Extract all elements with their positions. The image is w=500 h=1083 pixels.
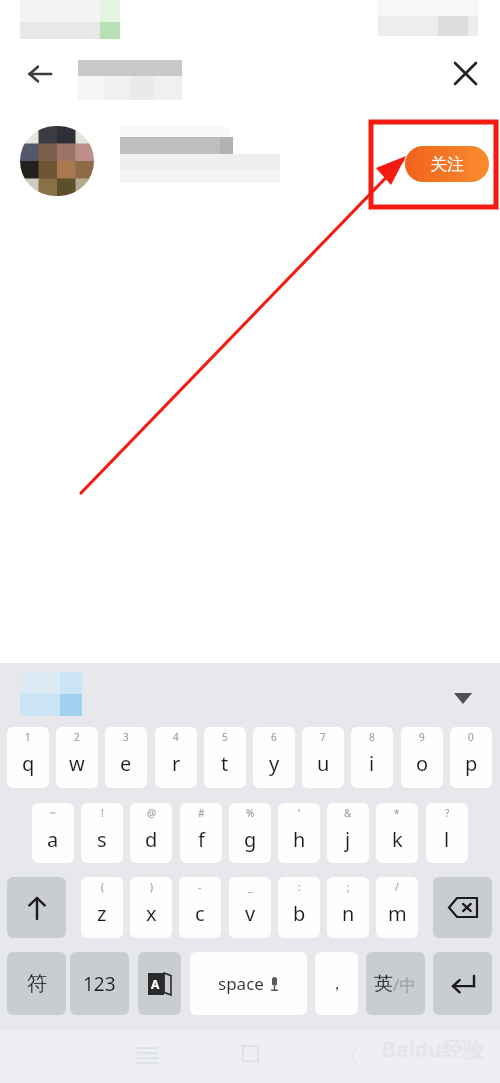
- staticText: 6: [271, 730, 277, 744]
- staticText: :: [298, 880, 301, 894]
- staticText: o: [416, 750, 429, 777]
- staticText: a: [47, 826, 59, 853]
- button[interactable]: ~: [32, 803, 74, 863]
- button[interactable]: !: [81, 803, 123, 863]
- staticText: u: [317, 750, 330, 777]
- button[interactable]: %: [229, 803, 271, 863]
- staticText: e: [120, 750, 132, 777]
- button[interactable]: 4: [155, 727, 197, 788]
- button[interactable]: Back: [14, 49, 66, 99]
- button[interactable]: 123: [70, 952, 129, 1015]
- staticText: i: [369, 750, 375, 777]
- staticText: /: [395, 880, 399, 894]
- staticText: /中: [393, 973, 417, 996]
- staticText: h: [293, 826, 306, 853]
- staticText: A: [151, 976, 160, 992]
- button[interactable]: space: [190, 952, 307, 1015]
- staticText: space: [218, 972, 264, 995]
- button[interactable]: [433, 877, 492, 938]
- staticText: t: [221, 750, 229, 777]
- button[interactable]: ?: [426, 803, 468, 863]
- staticText: p: [465, 750, 478, 777]
- button[interactable]: 8: [351, 727, 393, 788]
- button[interactable]: 6: [253, 727, 295, 788]
- button[interactable]: 7: [302, 727, 344, 788]
- staticText: d: [145, 826, 158, 853]
- button[interactable]: :: [278, 877, 320, 938]
- staticText: ~: [50, 806, 56, 820]
- button[interactable]: ': [278, 803, 320, 863]
- staticText: @: [147, 806, 156, 820]
- button[interactable]: ，: [315, 952, 358, 1015]
- staticText: v: [245, 900, 256, 927]
- button[interactable]: @: [130, 803, 172, 863]
- button[interactable]: *: [376, 803, 418, 863]
- staticText: ?: [445, 806, 450, 820]
- staticText: c: [195, 900, 205, 927]
- button[interactable]: 2: [56, 727, 98, 788]
- staticText: j: [345, 826, 351, 853]
- staticText: &: [344, 806, 352, 820]
- button[interactable]: /: [376, 877, 418, 938]
- staticText: 7: [320, 730, 326, 744]
- staticText: f: [198, 826, 205, 853]
- staticText: (: [101, 880, 104, 894]
- staticText: 关注: [430, 154, 464, 175]
- button[interactable]: 0: [450, 727, 492, 788]
- staticText: r: [172, 750, 181, 777]
- staticText: w: [69, 750, 85, 777]
- button[interactable]: 英: [366, 952, 425, 1015]
- staticText: 3: [123, 730, 129, 744]
- staticText: ;: [347, 880, 350, 894]
- button[interactable]: ): [130, 877, 172, 938]
- button[interactable]: 5: [204, 727, 246, 788]
- staticText: g: [244, 826, 257, 853]
- staticText: k: [392, 826, 403, 853]
- button[interactable]: 9: [401, 727, 443, 788]
- staticText: ': [298, 806, 301, 820]
- staticText: 9: [419, 730, 425, 744]
- staticText: m: [388, 900, 407, 927]
- staticText: 5: [222, 730, 228, 744]
- staticText: 4: [173, 730, 179, 744]
- staticText: z: [97, 900, 107, 927]
- button[interactable]: [433, 952, 492, 1015]
- button[interactable]: (: [81, 877, 123, 938]
- button[interactable]: [7, 877, 66, 938]
- staticText: b: [293, 900, 306, 927]
- staticText: Baidu经验: [382, 1035, 484, 1064]
- staticText: ): [150, 880, 153, 894]
- staticText: 8: [369, 730, 375, 744]
- staticText: 2: [74, 730, 80, 744]
- button[interactable]: A: [138, 952, 181, 1015]
- staticText: 英: [374, 972, 393, 996]
- button[interactable]: ;: [327, 877, 369, 938]
- button[interactable]: &: [327, 803, 369, 863]
- button[interactable]: -: [179, 877, 221, 938]
- staticText: 123: [83, 971, 116, 997]
- button[interactable]: _: [229, 877, 271, 938]
- button[interactable]: 关注: [405, 146, 489, 182]
- staticText: 1: [25, 730, 31, 744]
- button[interactable]: Close: [440, 48, 490, 98]
- staticText: s: [97, 826, 107, 853]
- staticText: q: [22, 750, 35, 777]
- staticText: x: [146, 900, 157, 927]
- button[interactable]: 符: [7, 952, 66, 1015]
- button[interactable]: 1: [7, 727, 49, 788]
- staticText: l: [444, 826, 450, 853]
- staticText: ，: [329, 974, 345, 994]
- staticText: 0: [468, 730, 474, 744]
- staticText: #: [198, 806, 205, 820]
- staticText: -: [198, 880, 202, 894]
- button[interactable]: 3: [105, 727, 147, 788]
- staticText: %: [246, 806, 255, 820]
- button[interactable]: Hide keyboard: [440, 678, 486, 718]
- staticText: n: [342, 900, 355, 927]
- button[interactable]: #: [180, 803, 222, 863]
- staticText: 符: [27, 971, 47, 996]
- staticText: !: [101, 806, 104, 820]
- staticText: _: [248, 880, 253, 894]
- staticText: *: [394, 806, 400, 820]
